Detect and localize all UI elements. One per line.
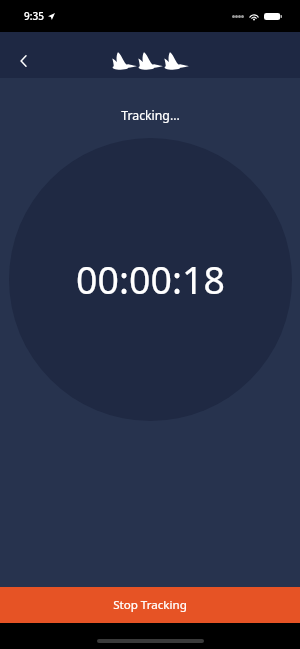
staticText: Tracking... (121, 107, 180, 124)
staticText: 00:00:18 (76, 254, 225, 305)
button[interactable]: Stop Tracking (0, 587, 300, 623)
staticText: Stop Tracking (113, 597, 187, 613)
button[interactable]: Back (9, 47, 37, 75)
staticText: 9:35 (24, 9, 44, 23)
